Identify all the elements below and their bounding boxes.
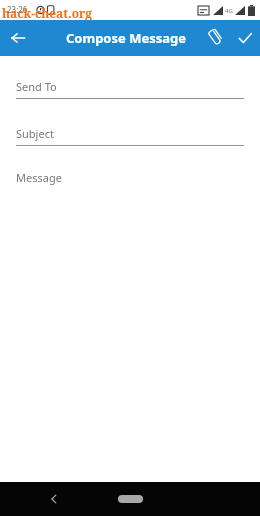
button[interactable]: Send To: [16, 78, 244, 99]
button[interactable]: Home: [110, 489, 150, 509]
button[interactable]: Message: [16, 168, 244, 186]
button[interactable]: Send: [230, 23, 260, 53]
staticText: Send To: [16, 79, 57, 94]
staticText: 4G: [225, 7, 233, 15]
button[interactable]: Subject: [16, 125, 244, 146]
staticText: Compose Message: [66, 29, 186, 47]
button[interactable]: Attach file: [200, 23, 230, 53]
staticText: Subject: [16, 126, 54, 141]
staticText: hack-cheat.org: [2, 5, 93, 21]
button[interactable]: Back: [0, 20, 36, 56]
button[interactable]: Back: [40, 485, 68, 513]
staticText: Message: [16, 170, 62, 185]
staticText: 23:26: [7, 4, 28, 15]
